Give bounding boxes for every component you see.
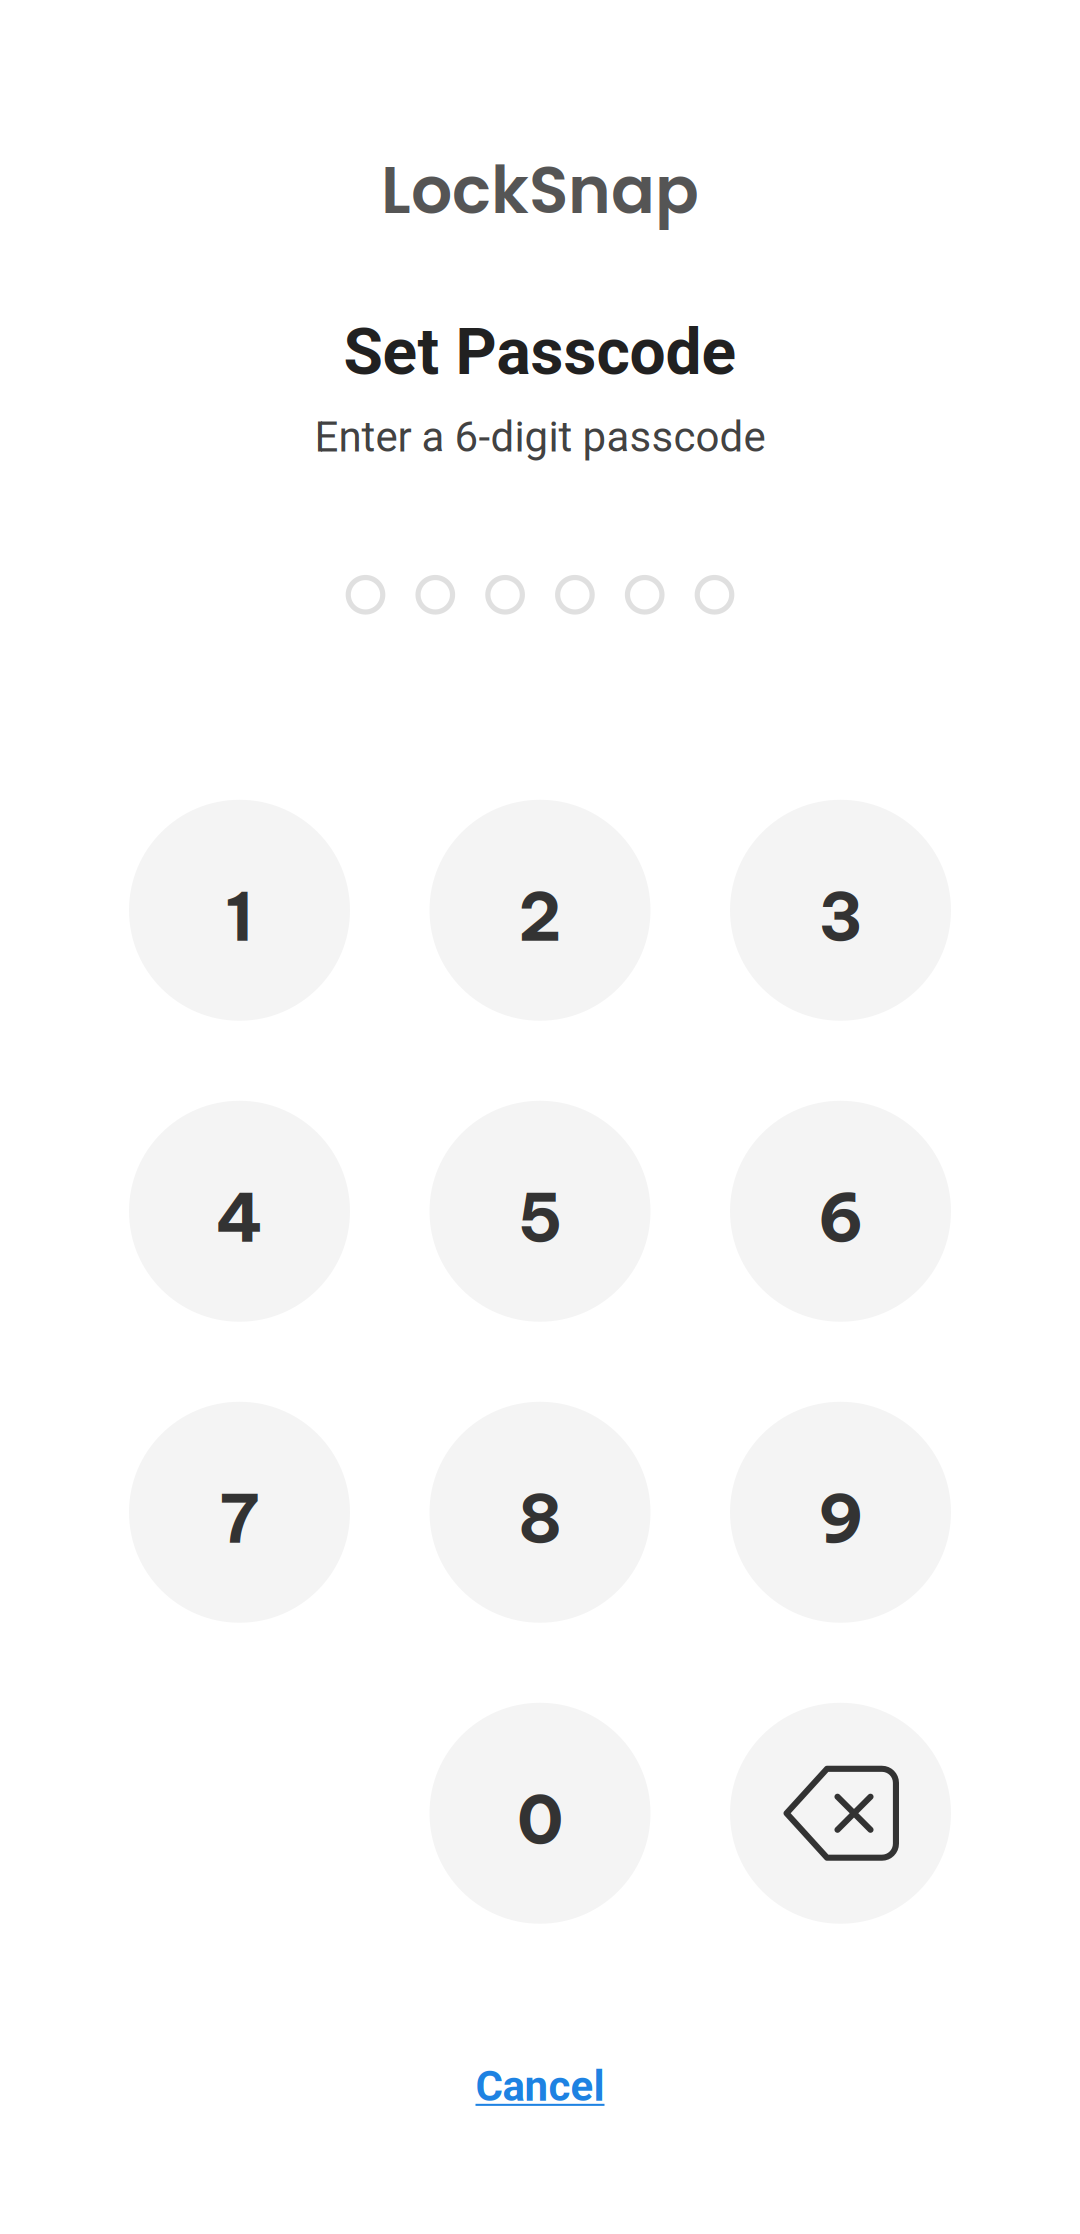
button[interactable]: Cancel xyxy=(475,2062,604,2111)
staticText: 0 xyxy=(517,1777,563,1861)
staticText: LockSnap xyxy=(381,145,699,235)
button[interactable]: Delete xyxy=(730,1703,951,1924)
button[interactable]: 1 xyxy=(129,800,350,1021)
staticText: 6 xyxy=(817,1175,863,1259)
staticText: Cancel xyxy=(475,2062,604,2111)
button[interactable]: 7 xyxy=(129,1402,350,1623)
button[interactable]: 6 xyxy=(730,1101,951,1322)
staticText: 2 xyxy=(518,874,562,958)
button[interactable]: 2 xyxy=(429,800,650,1021)
button[interactable]: 9 xyxy=(730,1402,951,1623)
button[interactable]: 5 xyxy=(429,1101,650,1322)
staticText: 8 xyxy=(518,1476,562,1560)
staticText: 7 xyxy=(219,1476,259,1560)
staticText: 4 xyxy=(215,1175,263,1259)
button[interactable]: 0 xyxy=(429,1703,650,1924)
button[interactable]: 4 xyxy=(129,1101,350,1322)
staticText: 5 xyxy=(517,1175,562,1259)
staticText: 1 xyxy=(225,874,254,958)
button[interactable]: 3 xyxy=(730,800,951,1021)
staticText: 9 xyxy=(817,1476,863,1560)
button[interactable]: 8 xyxy=(429,1402,650,1623)
staticText: Enter a 6-digit passcode xyxy=(314,412,765,462)
staticText: 3 xyxy=(818,874,863,958)
staticText: Set Passcode xyxy=(343,314,736,389)
